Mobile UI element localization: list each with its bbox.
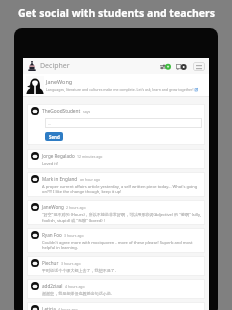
staticText: an hour ago [80, 177, 101, 182]
button[interactable]: Piechur [27, 256, 205, 276]
button[interactable]: Send [45, 132, 63, 141]
staticText: 12 minutes ago [77, 154, 103, 159]
staticText: Couldn't agree more with mociquoren - mo… [42, 240, 202, 250]
staticText: 4 hours ago [58, 307, 78, 310]
staticText: 4 hours ago [65, 284, 85, 289]
staticText: Languages, literature and cultures make … [46, 87, 194, 92]
staticText: says [83, 109, 91, 114]
button[interactable]: JaneWong [27, 200, 205, 225]
staticText: 2 hours ago [66, 205, 86, 210]
button[interactable]: Menu [193, 62, 205, 71]
staticText: Get social with students and teachers [18, 6, 215, 20]
staticText: 平时说话个个课大都上去了，我想不是了。 [42, 268, 119, 273]
staticText: JaneWong [46, 78, 73, 85]
staticText: TheGoodStudent [42, 108, 81, 115]
button[interactable]: Leticia [27, 302, 205, 310]
staticText: 3 hours ago [61, 261, 81, 266]
staticText: Mark in England [42, 176, 78, 182]
button[interactable]: Ryan Foo [27, 228, 205, 253]
staticText: Decipher [40, 61, 70, 71]
staticText: Ryan Foo [42, 232, 62, 238]
staticText: ... [48, 121, 52, 126]
staticText: Jorge Regalado [42, 153, 75, 159]
button[interactable]: Messages [176, 61, 187, 72]
staticText: "好空"是不对的 (Hours)，所以不能说非常好啊，可以用形容词(Adject… [42, 212, 202, 223]
staticText: 3 hours ago [64, 233, 84, 238]
staticText: JaneWong [42, 204, 64, 210]
staticText: add2ziaal [42, 283, 63, 289]
staticText: A proper current affairs article yesterd… [42, 184, 202, 194]
button[interactable]: add2ziaal [27, 279, 205, 299]
staticText: Leticia [42, 306, 56, 310]
button[interactable]: Mark in England [27, 172, 205, 197]
staticText: Loved it! [42, 161, 58, 167]
button[interactable]: ... [45, 118, 202, 128]
staticText: 谢谢您，我是老师但也教授这句话小说。 [42, 291, 115, 296]
button[interactable]: Notifications [160, 61, 171, 72]
button[interactable]: Jorge Regalado [27, 149, 205, 169]
staticText: Send [49, 134, 60, 140]
staticText: Piechur [42, 260, 59, 266]
